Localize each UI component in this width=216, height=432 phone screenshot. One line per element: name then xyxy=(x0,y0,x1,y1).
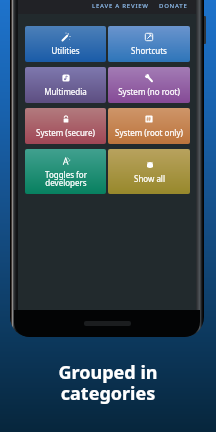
button[interactable]: Show all xyxy=(108,149,190,194)
staticText: Shortcuts xyxy=(131,45,167,56)
staticText: Utilities xyxy=(51,45,80,56)
staticText: Grouped in categories xyxy=(0,360,216,405)
button[interactable]: LEAVE A REVIEW xyxy=(90,0,151,12)
button[interactable]: System (secure) xyxy=(25,108,106,144)
staticText: System (root only) xyxy=(115,127,183,138)
staticText: Multimedia xyxy=(44,86,87,97)
staticText: Show all xyxy=(134,173,165,184)
staticText: Toggles for developers xyxy=(45,169,87,188)
staticText: DONATE xyxy=(159,2,188,10)
button[interactable]: Multimedia xyxy=(25,67,106,103)
button[interactable]: Shortcuts xyxy=(108,26,190,62)
button[interactable]: Toggles for developers xyxy=(25,149,106,194)
staticText: LEAVE A REVIEW xyxy=(92,2,149,10)
button[interactable]: Utilities xyxy=(25,26,106,62)
button[interactable]: System (no root) xyxy=(108,67,190,103)
staticText: System (no root) xyxy=(118,86,180,97)
button[interactable]: DONATE xyxy=(157,0,190,12)
staticText: System (secure) xyxy=(36,127,95,138)
button[interactable]: System (root only) xyxy=(108,108,190,144)
